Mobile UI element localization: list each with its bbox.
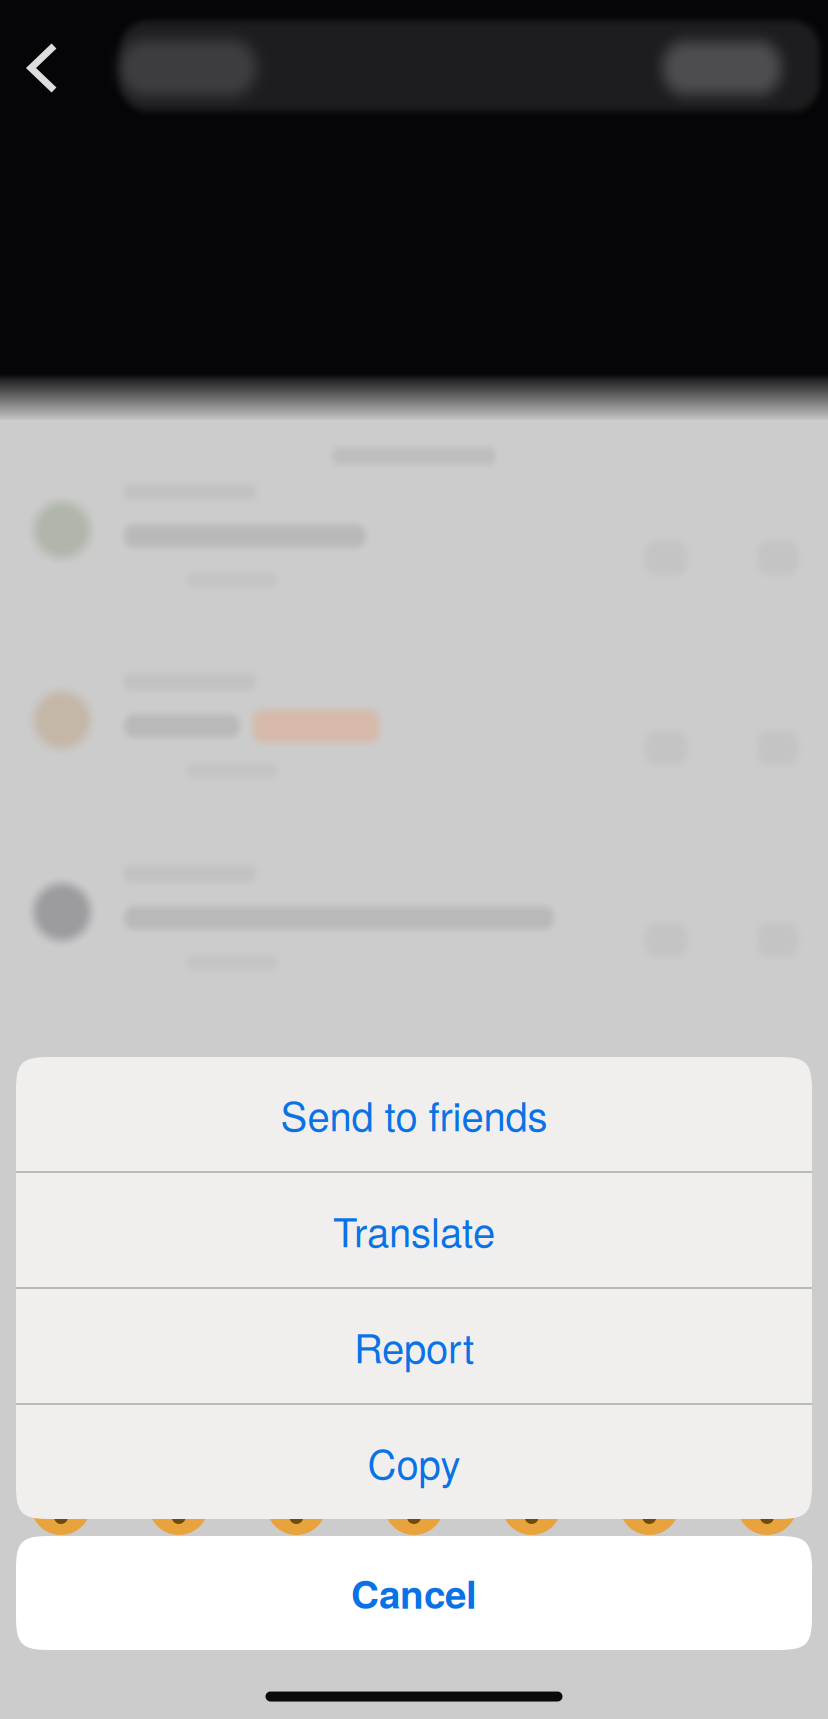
button[interactable]: Report	[16, 1289, 812, 1403]
button[interactable]: Translate	[16, 1173, 812, 1287]
staticText: Translate	[333, 1201, 495, 1259]
button[interactable]: Send to friends	[16, 1057, 812, 1171]
button[interactable]: Cancel	[16, 1536, 812, 1650]
button[interactable]: Reaction	[735, 1473, 799, 1537]
button[interactable]: Copy	[16, 1405, 812, 1519]
button[interactable]: Reaction	[264, 1473, 328, 1537]
button[interactable]: Reaction	[29, 1473, 93, 1537]
button[interactable]: Reaction	[617, 1473, 681, 1537]
button[interactable]: Reaction	[147, 1473, 211, 1537]
staticText: Send to friends	[280, 1085, 547, 1143]
staticText: Cancel	[351, 1565, 477, 1621]
button[interactable]: Reaction	[382, 1473, 446, 1537]
staticText: Copy	[367, 1433, 460, 1491]
button[interactable]: Back	[12, 26, 80, 110]
button[interactable]: Reaction	[500, 1473, 564, 1537]
staticText: Report	[354, 1317, 474, 1375]
